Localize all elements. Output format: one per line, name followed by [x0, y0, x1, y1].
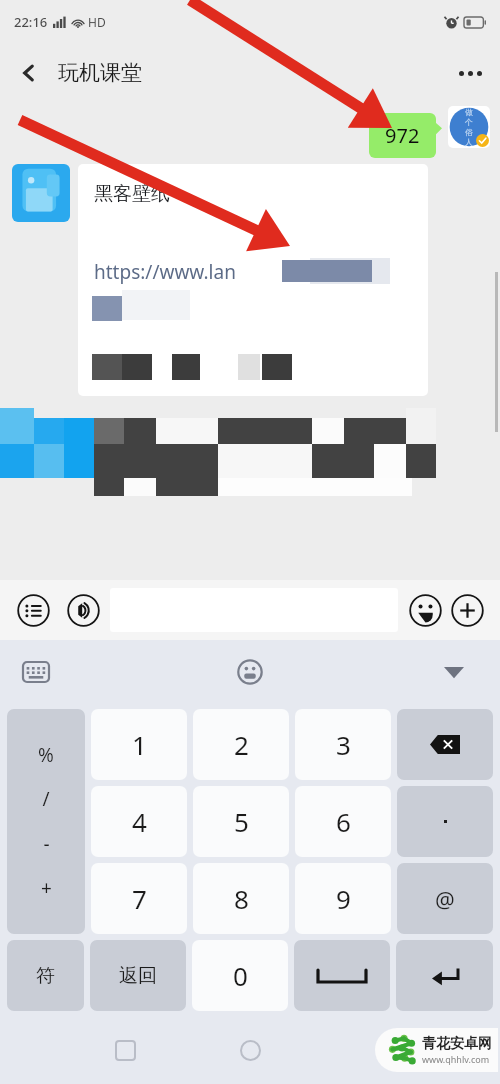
button[interactable]: Emoji	[404, 589, 446, 631]
button[interactable]: Recents	[103, 1028, 147, 1072]
button[interactable]: Add	[446, 589, 488, 631]
button[interactable]: Space	[294, 940, 390, 1011]
button[interactable]: Delete	[397, 709, 493, 780]
staticText: https://www.lan	[94, 259, 236, 285]
button[interactable]: 1	[91, 709, 187, 780]
staticText: i1yhm6f	[94, 292, 163, 317]
button[interactable]: 返回	[90, 940, 186, 1011]
button[interactable]: Enter	[396, 940, 493, 1011]
staticText: 5	[234, 804, 249, 839]
button[interactable]: Menu	[12, 589, 54, 631]
button[interactable]: 3	[295, 709, 391, 780]
staticText: 俗	[465, 127, 473, 137]
staticText: 972	[385, 122, 420, 149]
staticText: 做	[465, 107, 473, 117]
button[interactable]: Voice	[62, 589, 104, 631]
staticText: 玩机课堂	[58, 60, 142, 86]
staticText: 2	[234, 727, 249, 762]
button[interactable]: @	[397, 863, 493, 934]
staticText: 6	[336, 804, 351, 839]
button[interactable]: Back	[6, 50, 52, 96]
button[interactable]: 9	[295, 863, 391, 934]
staticText: 8	[234, 881, 249, 916]
button[interactable]: Avatar	[12, 164, 70, 222]
button[interactable]: 黑客壁纸·	[78, 164, 428, 396]
button[interactable]: Avatar	[448, 106, 490, 148]
staticText: 返回	[119, 964, 157, 988]
staticText: 人	[465, 137, 473, 147]
staticText: 4	[132, 804, 147, 839]
button[interactable]: %	[7, 709, 85, 934]
staticText: 符	[36, 964, 55, 988]
staticText: 9	[336, 881, 351, 916]
staticText: 0	[233, 958, 248, 993]
staticText: 个	[465, 117, 473, 127]
button[interactable]: 2	[193, 709, 289, 780]
button[interactable]: Hide keyboard	[434, 652, 474, 692]
staticText: -	[43, 831, 50, 857]
staticText: 7	[132, 881, 147, 916]
button[interactable]: 8	[193, 863, 289, 934]
button[interactable]: Home	[228, 1028, 272, 1072]
staticText: 22:16	[14, 13, 48, 31]
staticText: HD	[88, 14, 106, 30]
button[interactable]: 7	[91, 863, 187, 934]
button[interactable]: More options	[446, 49, 494, 97]
button[interactable]: 0	[192, 940, 288, 1011]
staticText: %	[38, 742, 54, 768]
button[interactable]: 4	[91, 786, 187, 857]
staticText: @	[435, 884, 455, 914]
button[interactable]: Emoji keyboard	[230, 652, 270, 692]
button[interactable]	[0, 404, 440, 496]
button[interactable]: 972	[369, 113, 442, 158]
staticText: /	[42, 786, 50, 812]
staticText: 黑客壁纸·	[94, 180, 176, 206]
button[interactable]: Keyboard settings	[16, 652, 56, 692]
staticText: 1	[132, 727, 147, 762]
staticText: www.qhhlv.com	[422, 1053, 490, 1065]
staticText: 青花安卓网	[422, 1035, 492, 1053]
button[interactable]: 6	[295, 786, 391, 857]
button[interactable]: 5	[193, 786, 289, 857]
staticText: 3	[336, 727, 351, 762]
button[interactable]	[397, 786, 493, 857]
button[interactable]: 符	[7, 940, 84, 1011]
staticText: +	[41, 875, 52, 901]
